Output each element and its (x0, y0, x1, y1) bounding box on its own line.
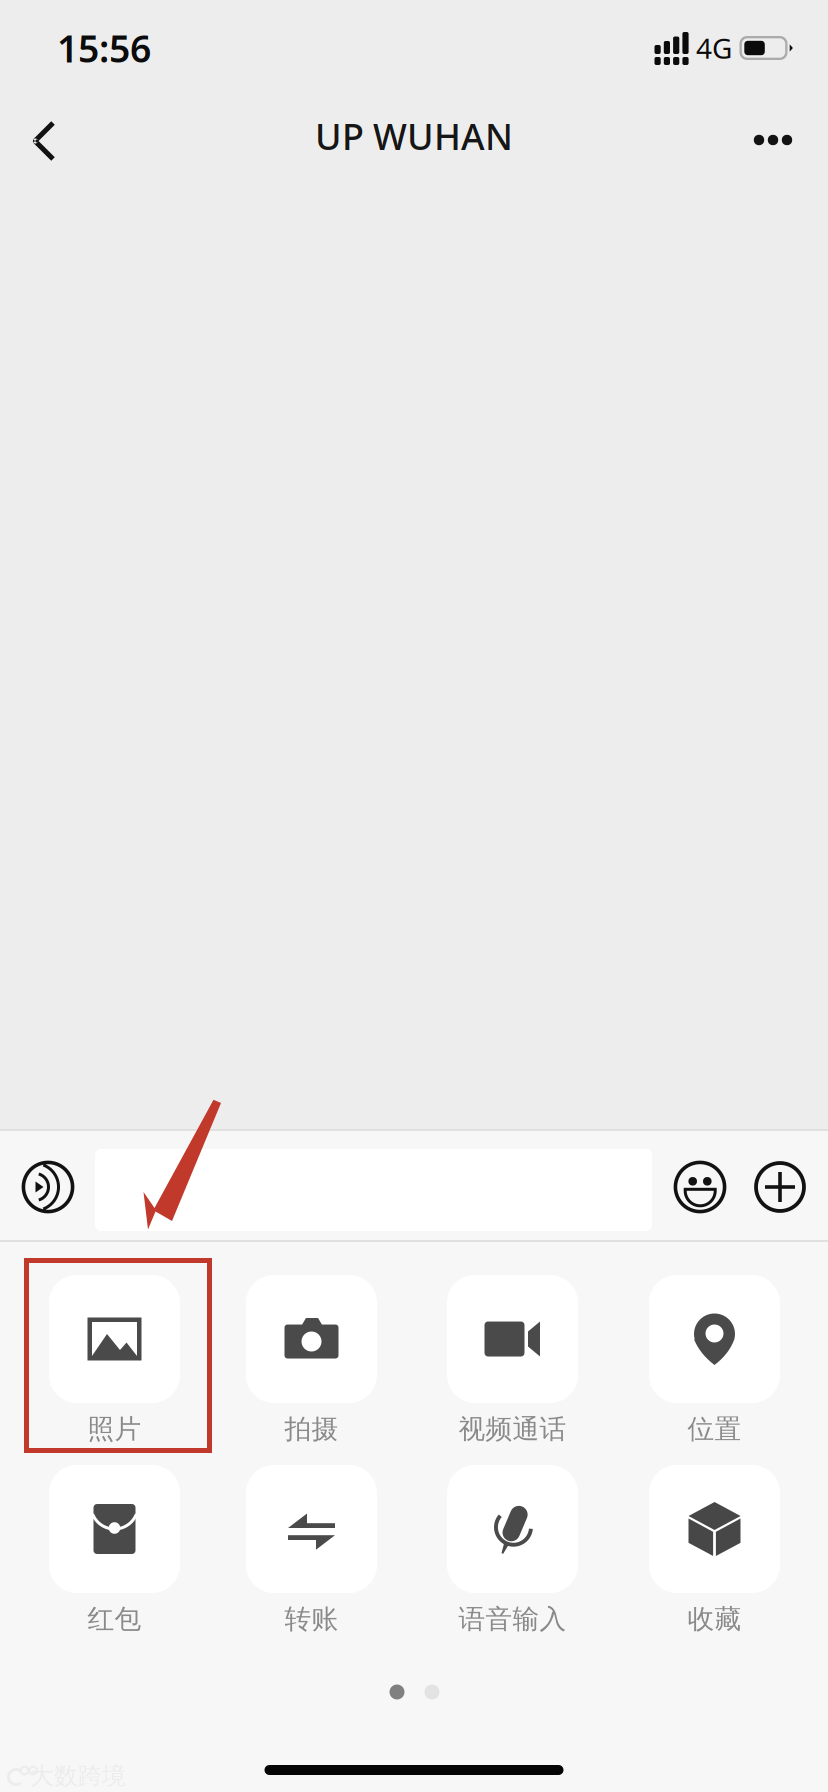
staticText: 红包 (87, 1603, 141, 1635)
button[interactable]: Back (0, 108, 92, 174)
button[interactable]: 照片 (19, 1275, 209, 1460)
button[interactable]: Voice message (10, 1149, 86, 1225)
button[interactable]: 拍摄 (216, 1275, 406, 1460)
staticText: 大数跨境 (30, 1761, 126, 1791)
button[interactable]: More (735, 108, 821, 172)
button[interactable]: More options (742, 1149, 818, 1225)
staticText: 收藏 (687, 1603, 741, 1635)
staticText: 位置 (687, 1413, 741, 1445)
staticText: 拍摄 (284, 1413, 338, 1445)
button[interactable]: 收藏 (619, 1465, 809, 1650)
button[interactable]: 红包 (19, 1465, 209, 1650)
button[interactable]: 语音输入 (417, 1465, 607, 1650)
button[interactable]: 位置 (619, 1275, 809, 1460)
staticText: 照片 (87, 1413, 141, 1445)
staticText: 转账 (284, 1603, 338, 1635)
staticText: 15:56 (57, 23, 151, 73)
staticText: UP WUHAN (315, 112, 513, 160)
staticText: 语音输入 (458, 1603, 566, 1635)
button[interactable]: 视频通话 (417, 1275, 607, 1460)
staticText: 4G (696, 29, 732, 67)
button[interactable]: 转账 (216, 1465, 406, 1650)
button[interactable]: Emoji (662, 1149, 738, 1225)
staticText: 视频通话 (458, 1413, 566, 1445)
